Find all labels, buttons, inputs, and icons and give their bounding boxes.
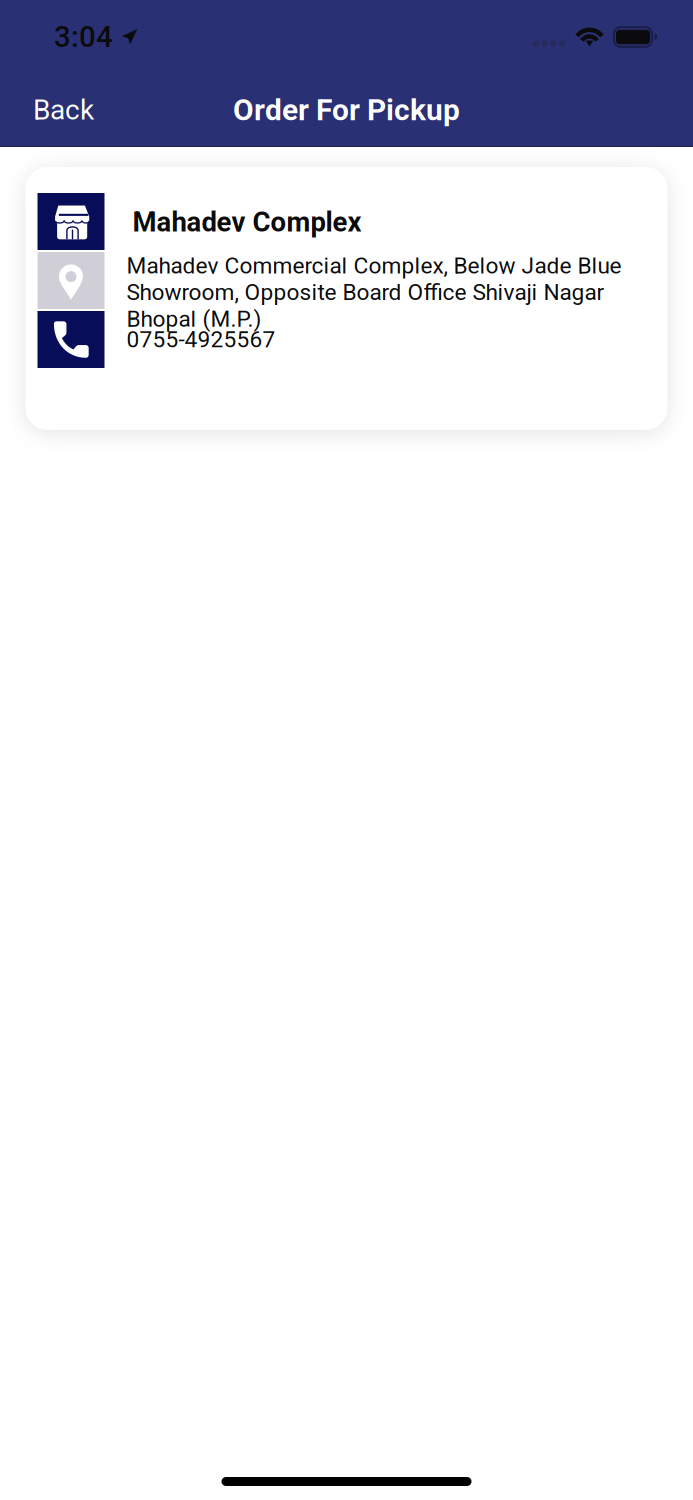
staticText: Order For Pickup (233, 92, 460, 127)
staticText: Mahadev Complex (132, 206, 361, 238)
button[interactable]: Back (15, 82, 112, 138)
staticText: 3:04 (54, 20, 113, 54)
staticText: Mahadev Commercial Complex, Below Jade B… (126, 252, 621, 332)
staticText: 0755-4925567 (126, 326, 275, 353)
staticText: Back (33, 94, 94, 126)
